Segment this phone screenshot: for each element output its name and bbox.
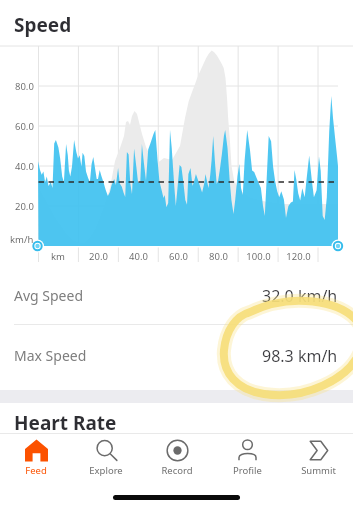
staticText: 60.0 (169, 250, 188, 263)
staticText: Feed (25, 464, 47, 477)
button[interactable]: Record (142, 434, 212, 479)
button[interactable]: Profile (212, 434, 282, 479)
staticText: Avg Speed (14, 286, 84, 305)
staticText: 40.0 (15, 160, 34, 173)
button[interactable]: Explore (71, 434, 141, 479)
staticText: 20.0 (89, 250, 108, 263)
staticText: 60.0 (15, 120, 34, 133)
staticText: Heart Rate (14, 410, 117, 436)
staticText: Summit (301, 464, 336, 477)
button[interactable]: Avg Speed (0, 266, 353, 325)
staticText: 120.0 (286, 250, 311, 263)
staticText: Speed (14, 12, 72, 38)
staticText: 40.0 (129, 250, 148, 263)
button[interactable]: Summit (283, 434, 353, 479)
staticText: Max Speed (14, 346, 87, 365)
staticText: 80.0 (209, 250, 228, 263)
staticText: 98.3 km/h (262, 345, 338, 367)
staticText: 100.0 (246, 250, 271, 263)
staticText: 20.0 (15, 200, 34, 213)
staticText: km (51, 250, 65, 263)
staticText: Profile (233, 464, 262, 477)
staticText: 32.0 km/h (262, 285, 338, 307)
staticText: 80.0 (15, 80, 34, 93)
button[interactable]: Feed (1, 434, 71, 479)
staticText: Record (161, 464, 193, 477)
staticText: Explore (89, 464, 123, 477)
button[interactable]: Max Speed (0, 326, 353, 385)
staticText: km/h (10, 233, 34, 246)
